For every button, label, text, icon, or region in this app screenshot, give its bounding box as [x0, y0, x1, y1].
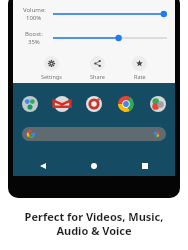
- button[interactable]: Recents: [137, 158, 153, 174]
- button[interactable]: Home: [86, 158, 102, 174]
- button[interactable]: App: [22, 96, 38, 112]
- staticText: Volume:: [23, 6, 46, 14]
- button[interactable]: App: [150, 96, 166, 112]
- staticText: Rate: [134, 73, 146, 80]
- staticText: 100%: [26, 14, 42, 22]
- button[interactable]: Volume:: [53, 8, 167, 20]
- staticText: Share: [90, 73, 105, 80]
- button[interactable]: Back: [35, 158, 51, 174]
- button[interactable]: Boost:: [53, 32, 167, 44]
- staticText: Boost:: [25, 30, 43, 38]
- button[interactable]: Google search: [22, 127, 166, 141]
- button[interactable]: App: [54, 96, 70, 112]
- staticText: 35%: [28, 38, 40, 46]
- button[interactable]: Share: [84, 55, 111, 81]
- button[interactable]: Rate: [126, 55, 153, 81]
- button[interactable]: App: [118, 96, 134, 112]
- button[interactable]: App: [86, 96, 102, 112]
- staticText: Settings: [41, 73, 62, 80]
- staticText: Perfect for Videos, Music, Audio & Voice: [10, 209, 178, 238]
- button[interactable]: Settings: [35, 55, 68, 81]
